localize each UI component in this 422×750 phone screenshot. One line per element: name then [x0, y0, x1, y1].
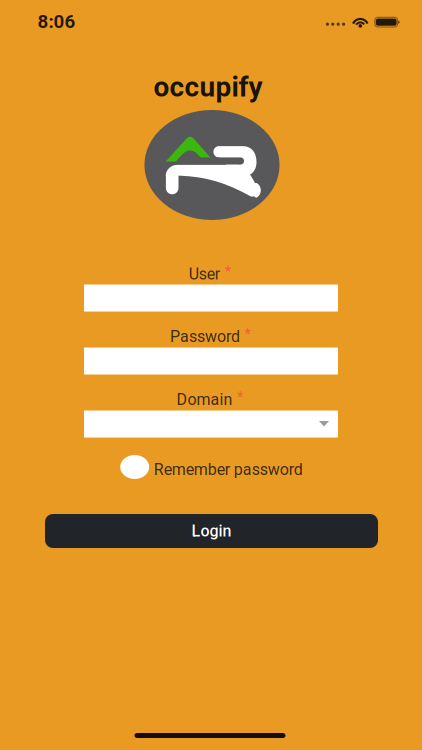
- staticText: Domain: [176, 390, 232, 409]
- staticText: Password: [170, 327, 240, 346]
- staticText: Remember password: [154, 460, 303, 479]
- button[interactable]: Remember password: [120, 451, 302, 481]
- button[interactable]: Domain: [84, 410, 338, 437]
- staticText: occupify: [153, 71, 262, 103]
- staticText: *: [237, 388, 243, 406]
- button[interactable]: Login: [45, 514, 378, 548]
- staticText: Login: [191, 522, 231, 540]
- staticText: User: [189, 265, 220, 283]
- staticText: *: [225, 263, 231, 280]
- staticText: *: [244, 325, 250, 343]
- staticText: 8:06: [37, 11, 75, 32]
- button[interactable]: User: [84, 284, 338, 311]
